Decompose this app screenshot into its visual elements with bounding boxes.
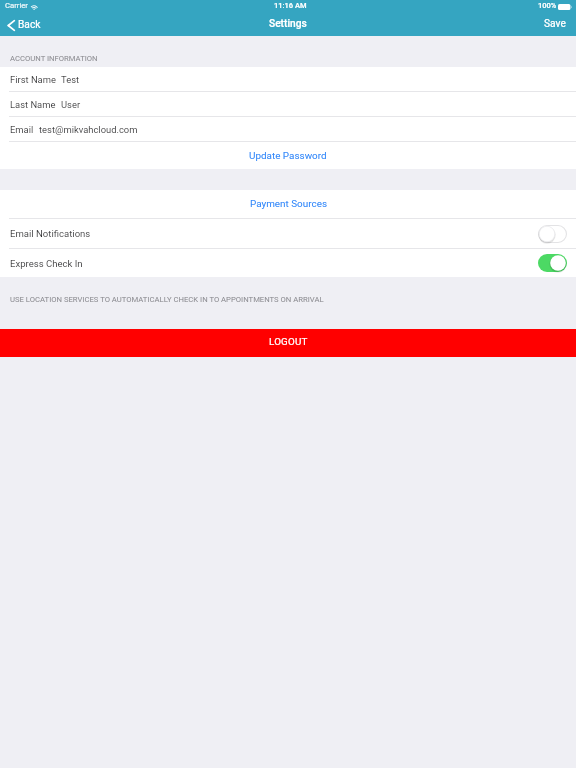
button[interactable]: Email — [0, 117, 576, 141]
staticText: USE LOCATION SERVICES TO AUTOMATICALLY C… — [10, 295, 324, 304]
button[interactable]: Payment Sources — [0, 190, 576, 218]
staticText: LOGOUT — [269, 336, 308, 347]
button[interactable]: LOGOUT — [0, 329, 576, 357]
button[interactable]: Save — [534, 19, 576, 31]
staticText: 100% — [538, 1, 557, 10]
button[interactable]: On — [538, 254, 567, 272]
button[interactable]: Email Notifications — [0, 219, 576, 248]
staticText: 11:16 AM — [274, 1, 307, 10]
staticText: User — [61, 99, 81, 110]
staticText: First Name — [10, 74, 56, 85]
button[interactable]: Off — [538, 225, 567, 243]
button[interactable]: Back — [0, 19, 49, 32]
staticText: Test — [61, 74, 80, 85]
staticText: Settings — [269, 18, 307, 30]
button[interactable]: Last Name — [0, 92, 576, 116]
button[interactable]: First Name — [0, 67, 576, 91]
staticText: Payment Sources — [250, 198, 327, 210]
staticText: Update Password — [249, 150, 327, 162]
other: Back — [7, 19, 15, 32]
button[interactable]: Update Password — [0, 142, 576, 169]
staticText: Last Name — [10, 99, 56, 110]
staticText: Carrier — [5, 1, 28, 10]
staticText: Email Notifications — [10, 228, 91, 239]
staticText: Back — [18, 19, 41, 31]
staticText: ACCOUNT INFORMATION — [10, 54, 98, 63]
staticText: Save — [544, 18, 566, 30]
staticText: test@mikvahcloud.com — [39, 124, 138, 135]
staticText: Express Check In — [10, 258, 83, 269]
staticText: Email — [10, 124, 34, 135]
button[interactable]: Express Check In — [0, 249, 576, 277]
